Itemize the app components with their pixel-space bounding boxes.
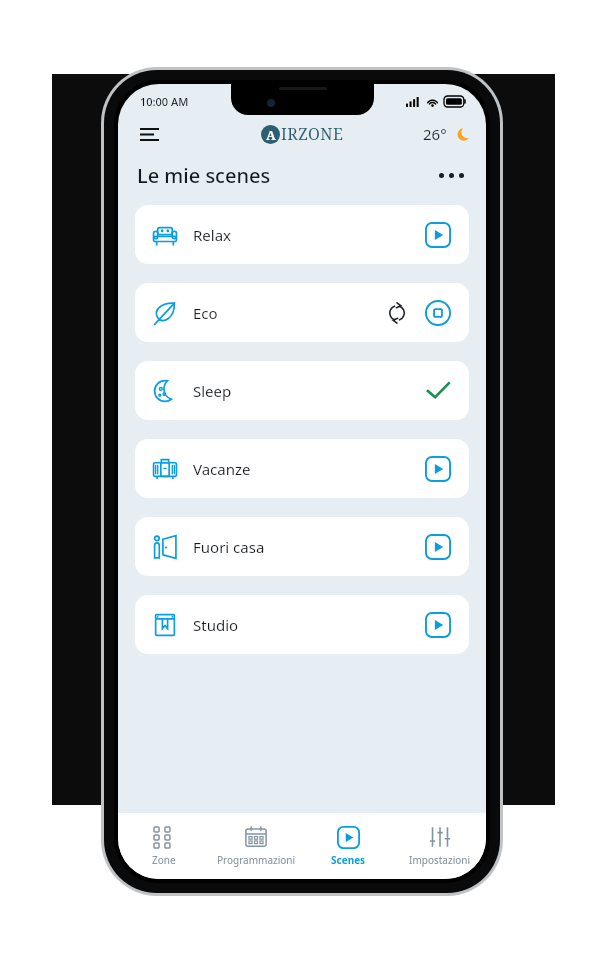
button[interactable]: Studio	[135, 595, 469, 654]
button[interactable]: Sleep	[135, 361, 469, 420]
staticText: Relax	[193, 225, 232, 245]
button[interactable]: Activate Vacanze	[423, 454, 453, 484]
button[interactable]: Programmazioni	[210, 813, 302, 879]
button[interactable]: Sleep active	[423, 376, 453, 406]
button[interactable]: Vacanze	[135, 439, 469, 498]
button[interactable]: Relax	[135, 205, 469, 264]
button[interactable]: Impostazioni	[394, 813, 486, 879]
staticText: IRZONE	[281, 123, 344, 145]
staticText: 26°	[423, 124, 447, 144]
button[interactable]: Fuori casa	[135, 517, 469, 576]
button[interactable]: Menu	[132, 117, 166, 151]
button[interactable]: Activate Relax	[423, 220, 453, 250]
button[interactable]: Activate Fuori casa	[423, 532, 453, 562]
button[interactable]: More options	[435, 169, 468, 182]
staticText: Fuori casa	[193, 537, 265, 557]
staticText: Vacanze	[193, 459, 251, 479]
staticText: Zone	[152, 853, 176, 867]
button[interactable]: Activate Studio	[423, 610, 453, 640]
staticText: Le mie scenes	[137, 162, 271, 189]
staticText: Impostazioni	[409, 853, 471, 867]
staticText: Programmazioni	[217, 853, 296, 867]
button[interactable]: Eco	[135, 283, 469, 342]
button[interactable]: Repeat	[383, 299, 411, 327]
staticText: Studio	[193, 615, 239, 635]
staticText: Eco	[193, 303, 218, 323]
staticText: Sleep	[193, 381, 232, 401]
staticText: A	[266, 126, 276, 144]
button[interactable]: Scenes	[302, 813, 394, 879]
staticText: Scenes	[331, 853, 366, 867]
button[interactable]: Zone	[118, 813, 210, 879]
button[interactable]: Stop Eco	[423, 298, 453, 328]
staticText: 10:00 AM	[140, 94, 189, 109]
